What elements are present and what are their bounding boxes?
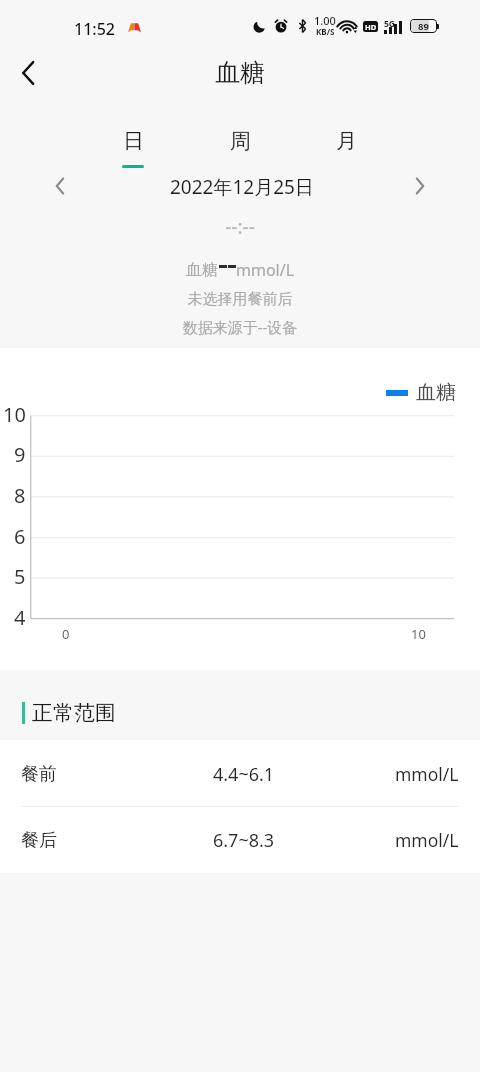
button[interactable]: 餐前 [0,741,480,807]
staticText: 9 [14,441,26,467]
staticText: 11:52 [74,18,115,40]
staticText: 2022年12月25日 [170,174,314,200]
staticText: 餐前 [21,763,57,786]
staticText: 6.7~8.3 [213,828,275,853]
staticText: 6 [14,523,26,549]
staticText: 未选择用餐前后 [0,290,480,309]
staticText: 5G [384,18,396,30]
staticText: HD [365,22,377,32]
staticText: 10 [411,625,426,643]
staticText: KB/S [316,26,335,37]
staticText: mmol/L [395,828,459,852]
staticText: 数据来源于--设备 [0,317,480,337]
button[interactable]: 日 [107,119,159,173]
button[interactable]: Back [4,44,54,102]
staticText: 8 [14,482,26,508]
staticText: mmol/L [236,259,295,281]
button[interactable]: Previous [41,164,79,208]
staticText: 10 [3,401,26,427]
staticText: 89 [418,20,429,32]
staticText: 正常范围 [32,700,116,726]
staticText: mmol/L [395,762,459,786]
staticText: 餐后 [21,829,57,852]
staticText: 1.00 [314,13,336,28]
staticText: 血糖 [416,380,456,405]
button[interactable]: Next [401,164,439,208]
staticText: 周 [230,128,251,154]
staticText: 日 [123,128,144,154]
button[interactable]: 月 [320,119,372,173]
staticText: 4 [14,604,26,630]
staticText: 5 [14,563,26,589]
staticText: 0 [62,625,70,643]
staticText: 月 [336,128,357,154]
staticText: 血糖 [186,260,218,280]
button[interactable]: 餐后 [0,807,480,873]
staticText: --:-- [0,214,480,240]
staticText: 4.4~6.1 [213,762,275,787]
button[interactable]: 周 [214,119,266,173]
staticText: 血糖 [215,57,265,88]
